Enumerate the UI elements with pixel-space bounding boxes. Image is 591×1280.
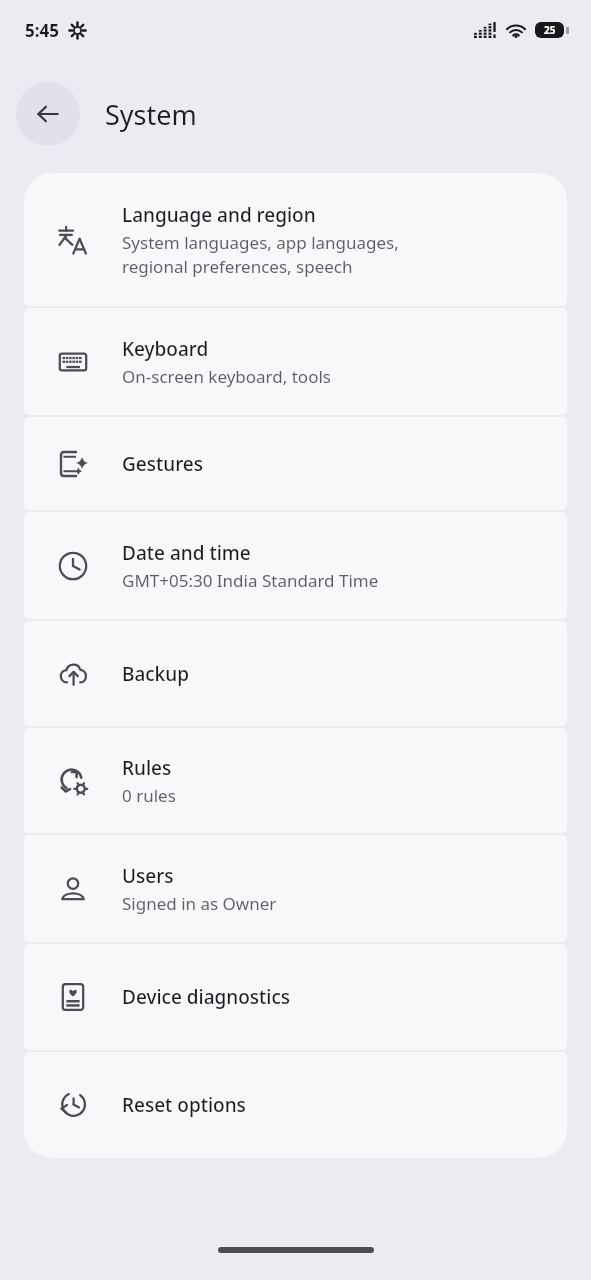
staticText: Rules	[122, 755, 172, 781]
staticText: Backup	[122, 661, 189, 687]
staticText: Device diagnostics	[122, 984, 291, 1010]
button[interactable]: Keyboard	[24, 308, 567, 415]
button[interactable]: Language and region	[24, 173, 567, 306]
button[interactable]: Rules	[24, 728, 567, 833]
staticText: 5:45	[25, 19, 59, 42]
staticText: 25	[544, 23, 556, 37]
staticText: System languages, app languages, regiona…	[122, 231, 399, 278]
button[interactable]: Back	[16, 82, 80, 146]
staticText: Reset options	[122, 1092, 246, 1118]
staticText: 0 rules	[122, 784, 176, 807]
staticText: Language and region	[122, 202, 316, 228]
staticText: On-screen keyboard, tools	[122, 365, 331, 388]
staticText: Signed in as Owner	[122, 892, 277, 915]
button[interactable]: Date and time	[24, 512, 567, 619]
staticText: Keyboard	[122, 336, 209, 362]
button[interactable]: Users	[24, 835, 567, 942]
button[interactable]: Backup	[24, 621, 567, 726]
staticText: Gestures	[122, 451, 203, 477]
button[interactable]: Gestures	[24, 417, 567, 510]
staticText: Date and time	[122, 540, 251, 566]
staticText: System	[105, 96, 197, 133]
staticText: Users	[122, 863, 174, 889]
button[interactable]: Reset options	[24, 1052, 567, 1158]
staticText: GMT+05:30 India Standard Time	[122, 569, 379, 592]
button[interactable]: Device diagnostics	[24, 944, 567, 1050]
